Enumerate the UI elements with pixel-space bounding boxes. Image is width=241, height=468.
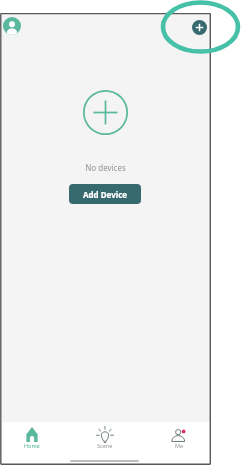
button[interactable]: Add Device — [69, 184, 141, 204]
button[interactable]: Scene — [82, 422, 128, 449]
staticText: Me — [175, 442, 184, 449]
staticText: Home — [24, 442, 40, 449]
button[interactable]: Add device — [83, 90, 128, 135]
staticText: Scene — [97, 442, 113, 449]
button[interactable]: Home — [9, 422, 55, 449]
staticText: Add Device — [83, 189, 128, 200]
staticText: No devices — [85, 162, 126, 173]
button[interactable]: Add device — [192, 20, 207, 35]
button[interactable]: Me — [156, 422, 202, 449]
button[interactable]: Profile — [3, 17, 21, 35]
